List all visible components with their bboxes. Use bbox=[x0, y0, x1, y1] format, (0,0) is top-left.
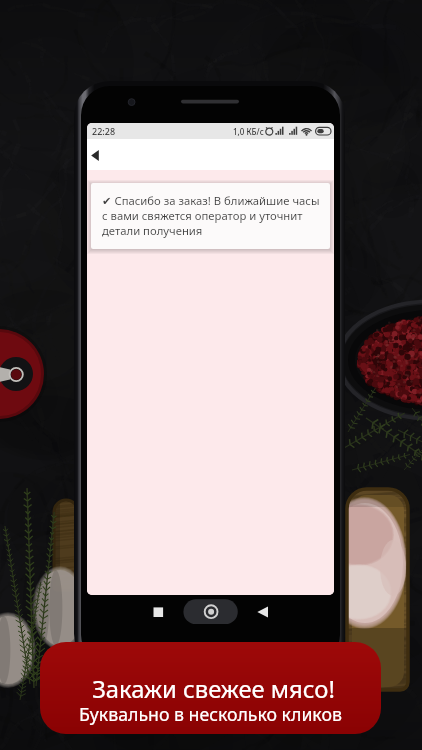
staticText: Закажи свежее мясо! bbox=[43, 673, 381, 705]
staticText: Буквально в несколько кликов bbox=[40, 702, 381, 726]
button[interactable]: Закажи свежее мясо! bbox=[40, 642, 381, 734]
staticText: ✔ Спасибо за заказ! В ближайшие часы с в… bbox=[102, 193, 320, 238]
button[interactable]: Back bbox=[87, 143, 107, 167]
button[interactable]: ✔ Спасибо за заказ! В ближайшие часы с в… bbox=[91, 183, 330, 249]
staticText: 1,0 КБ/с bbox=[233, 126, 264, 137]
staticText: 22:28 bbox=[92, 125, 116, 137]
